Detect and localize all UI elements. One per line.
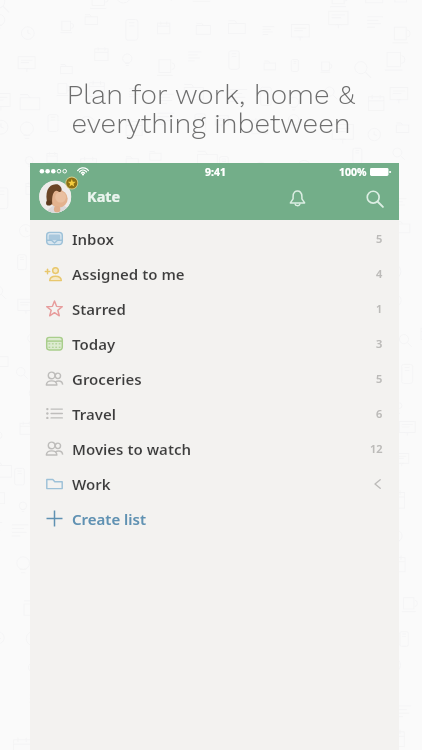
button[interactable]: Starred [30, 291, 399, 326]
staticText: 4 [376, 266, 383, 281]
staticText: 9:41 [205, 165, 226, 179]
staticText: Groceries [72, 369, 142, 389]
staticText: 6 [376, 406, 383, 421]
staticText: Today [72, 334, 116, 354]
staticText: 1 [376, 301, 383, 316]
staticText: Starred [72, 299, 127, 319]
staticText: 5 [376, 371, 383, 386]
button[interactable]: Inbox [30, 221, 399, 256]
staticText: Kate [87, 186, 121, 206]
staticText: Inbox [72, 229, 114, 249]
button[interactable]: Search [355, 180, 395, 220]
staticText: 12 [370, 441, 383, 456]
staticText: Assigned to me [72, 264, 185, 284]
staticText: Create list [72, 509, 147, 529]
button[interactable]: Groceries [30, 361, 399, 396]
button[interactable]: Assigned to me [30, 256, 399, 291]
button[interactable]: Today [30, 326, 399, 361]
button[interactable]: Travel [30, 396, 399, 431]
button[interactable]: Movies to watch [30, 431, 399, 466]
staticText: Work [72, 474, 111, 494]
staticText: Travel [72, 404, 116, 424]
staticText: Plan for work, home & everything inbetwe… [0, 78, 422, 140]
button[interactable]: Notifications [278, 180, 318, 220]
staticText: 5 [376, 231, 383, 246]
staticText: 3 [376, 336, 383, 351]
button[interactable]: Create list [30, 501, 399, 536]
staticText: Movies to watch [72, 439, 192, 459]
staticText: 100% [339, 165, 367, 179]
button[interactable]: Work [30, 466, 399, 501]
button[interactable]: Profile [38, 176, 78, 216]
